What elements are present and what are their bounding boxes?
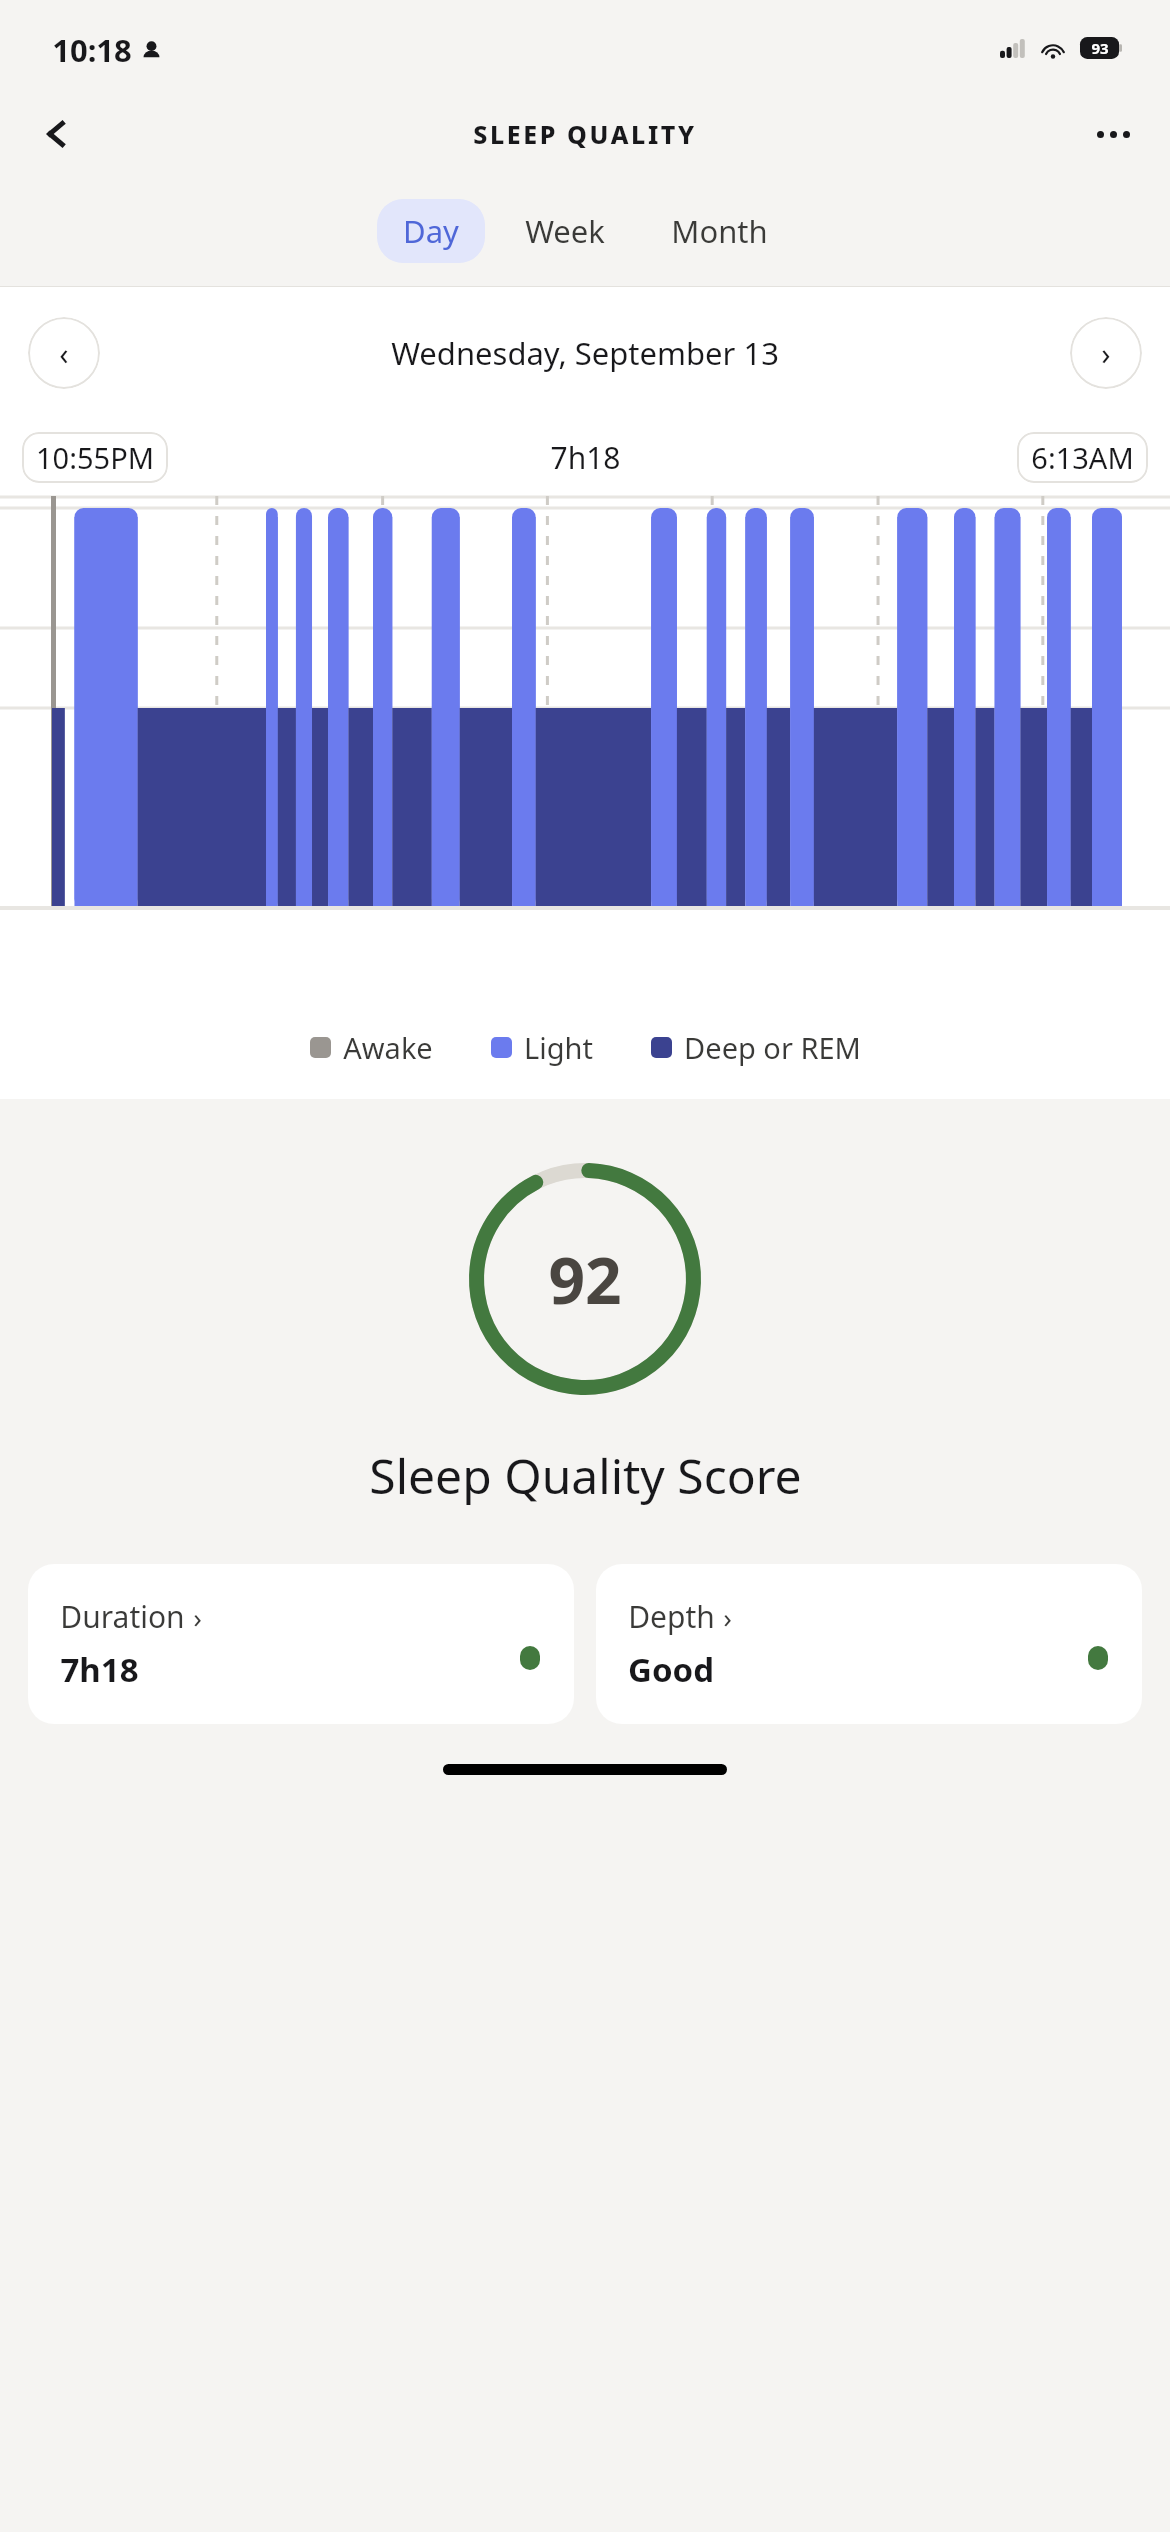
staticText: 6:13AM	[1031, 438, 1134, 477]
staticText: 93	[1091, 38, 1109, 58]
staticText: Light	[524, 1028, 593, 1067]
staticText: ‹	[59, 333, 69, 374]
staticText: 7h18	[60, 1647, 139, 1692]
button[interactable]: Back	[28, 105, 86, 163]
staticText: Day	[403, 210, 459, 252]
button[interactable]: Month	[645, 199, 794, 263]
staticText: Duration	[60, 1596, 185, 1637]
button[interactable]: Depth	[596, 1564, 1142, 1724]
staticText: ›	[1101, 333, 1111, 374]
staticText: Awake	[343, 1028, 433, 1067]
button[interactable]: Previous day	[28, 317, 100, 389]
staticText: Depth	[628, 1596, 715, 1637]
staticText: Wednesday, September 13	[391, 332, 779, 374]
button[interactable]: Week	[499, 199, 631, 263]
staticText: Sleep Quality Score	[369, 1443, 802, 1508]
staticText: 10:55PM	[36, 438, 154, 477]
staticText: ›	[193, 1598, 202, 1636]
staticText: 92	[548, 1236, 622, 1323]
staticText: 10:18	[52, 29, 132, 71]
staticText: ›	[723, 1598, 732, 1636]
button[interactable]: Duration	[28, 1564, 574, 1724]
staticText: Month	[671, 210, 768, 252]
staticText: SLEEP QUALITY	[473, 117, 697, 151]
staticText: Deep or REM	[684, 1028, 861, 1067]
button[interactable]: Next day	[1070, 317, 1142, 389]
staticText: 7h18	[550, 437, 621, 478]
staticText: Good	[628, 1647, 714, 1692]
staticText: Week	[525, 210, 605, 252]
button[interactable]: Day	[377, 199, 485, 263]
button[interactable]: More options	[1084, 105, 1142, 163]
